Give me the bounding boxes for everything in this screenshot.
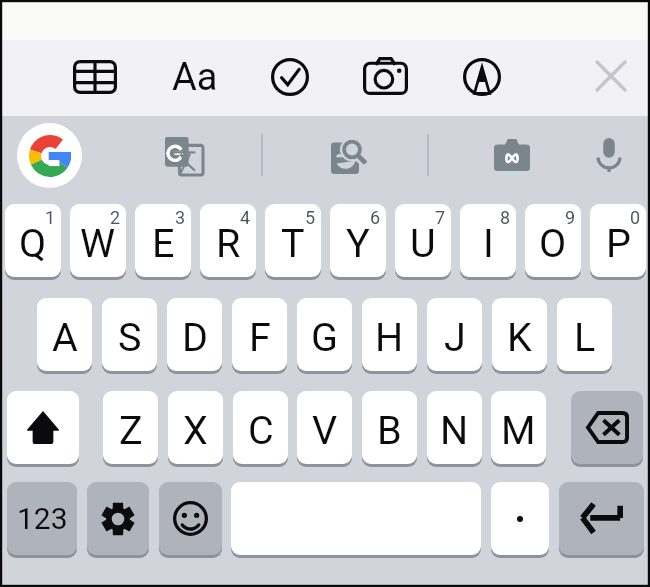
button[interactable]: Space (231, 482, 481, 555)
button[interactable]: Lens (321, 129, 376, 184)
button[interactable]: V (297, 391, 352, 464)
staticText: 9 (565, 207, 576, 228)
button[interactable]: Emoji (159, 482, 222, 555)
staticText: Q (19, 220, 47, 266)
staticText: L (574, 314, 596, 360)
staticText: U (410, 220, 436, 266)
staticText: 7 (435, 207, 446, 228)
staticText: Aa (172, 55, 218, 100)
staticText: Z (119, 407, 143, 453)
button[interactable]: G (297, 298, 352, 371)
staticText: V (312, 407, 338, 453)
staticText: P (606, 220, 631, 266)
button[interactable]: Backspace (571, 391, 643, 464)
staticText: 1 (45, 207, 56, 228)
button[interactable]: M (491, 391, 546, 464)
button[interactable]: R (200, 204, 256, 277)
button[interactable]: Translate (155, 127, 213, 185)
button[interactable]: L (557, 298, 612, 371)
button[interactable] (491, 482, 549, 555)
button[interactable]: Voice input (586, 128, 632, 182)
button[interactable]: Camera (355, 49, 416, 103)
staticText: E (152, 220, 175, 266)
staticText: C (248, 407, 274, 453)
button[interactable]: W (70, 204, 126, 277)
button[interactable]: Markup (455, 50, 509, 104)
staticText: I (483, 220, 494, 266)
staticText: J (444, 314, 466, 360)
staticText: A (52, 314, 78, 360)
button[interactable]: B (362, 391, 417, 464)
staticText: 0 (630, 207, 641, 228)
button[interactable]: Table (65, 52, 125, 102)
button[interactable]: Enter (559, 482, 644, 555)
button[interactable]: J (427, 298, 482, 371)
staticText: X (183, 407, 208, 453)
button[interactable]: E (135, 204, 191, 277)
button[interactable]: H (362, 298, 417, 371)
button[interactable]: Aa (171, 55, 219, 100)
button[interactable]: O (525, 204, 581, 277)
staticText: Y (346, 220, 370, 266)
staticText: M (501, 407, 536, 453)
staticText: 4 (240, 207, 251, 228)
button[interactable]: Z (103, 391, 158, 464)
staticText: 6 (370, 207, 381, 228)
button[interactable]: N (427, 391, 482, 464)
button[interactable]: Google (17, 123, 82, 188)
staticText: F (249, 314, 271, 360)
staticText: K (507, 314, 532, 360)
button[interactable]: Shift (7, 391, 79, 464)
button[interactable]: 123 (7, 482, 77, 555)
staticText: G (311, 314, 338, 360)
button[interactable]: C (233, 391, 288, 464)
button[interactable]: Check (263, 50, 317, 104)
button[interactable]: Sticker (484, 129, 540, 181)
button[interactable]: K (492, 298, 547, 371)
staticText: H (375, 314, 404, 360)
staticText: R (216, 220, 241, 266)
staticText: 123 (17, 501, 68, 536)
button[interactable]: Close (588, 53, 634, 99)
button[interactable]: I (460, 204, 516, 277)
staticText: 3 (175, 207, 186, 228)
button[interactable]: S (102, 298, 157, 371)
button[interactable]: F (232, 298, 287, 371)
button[interactable]: X (168, 391, 223, 464)
button[interactable]: P (590, 204, 646, 277)
staticText: 5 (305, 207, 316, 228)
button[interactable]: T (265, 204, 321, 277)
staticText: W (80, 220, 116, 266)
staticText: 2 (110, 207, 121, 228)
button[interactable]: U (395, 204, 451, 277)
staticText: S (118, 314, 142, 360)
staticText: T (281, 220, 305, 266)
button[interactable]: Q (5, 204, 61, 277)
staticText: O (539, 220, 567, 266)
button[interactable]: Settings (87, 482, 149, 555)
staticText: N (440, 407, 469, 453)
staticText: 8 (500, 207, 511, 228)
button[interactable]: Y (330, 204, 386, 277)
staticText: D (182, 314, 208, 360)
button[interactable]: D (167, 298, 222, 371)
button[interactable]: A (37, 298, 92, 371)
staticText: B (377, 407, 402, 453)
